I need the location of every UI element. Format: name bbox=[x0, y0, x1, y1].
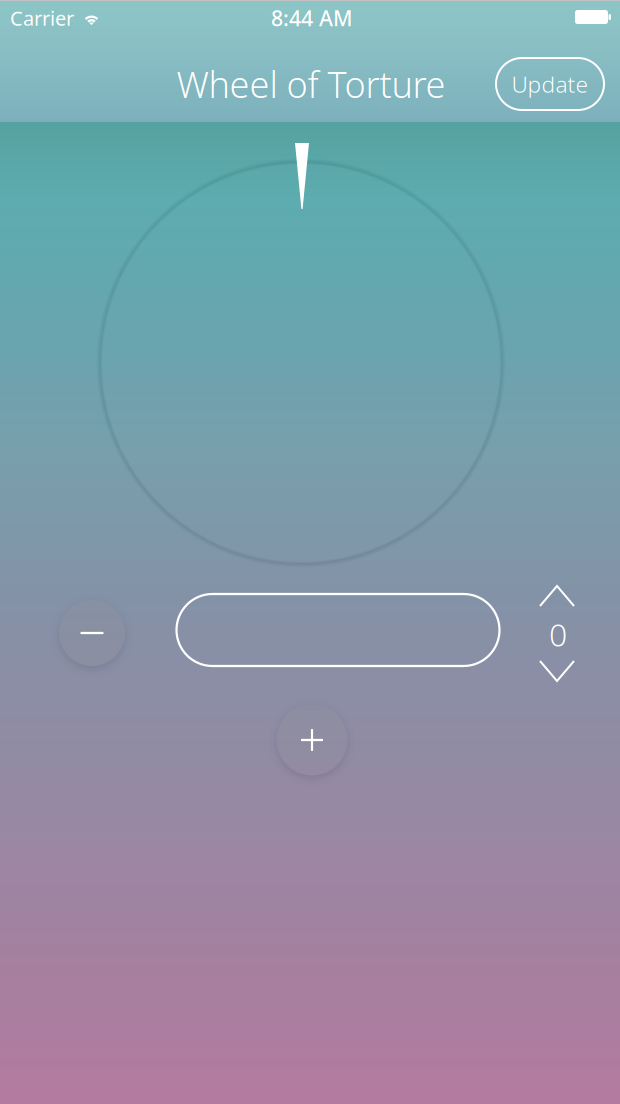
button[interactable]: Increment bbox=[268, 696, 355, 783]
button[interactable]: Update bbox=[496, 58, 604, 110]
staticText: 8:44 AM bbox=[271, 4, 353, 32]
button[interactable]: Entry field bbox=[176, 594, 499, 666]
button[interactable]: Increase bbox=[532, 578, 582, 614]
button[interactable]: Decrease bbox=[532, 653, 582, 689]
button[interactable]: Decrement bbox=[51, 592, 133, 674]
staticText: Carrier bbox=[10, 5, 74, 31]
staticText: 0 bbox=[549, 613, 567, 655]
staticText: Wheel of Torture bbox=[176, 60, 445, 108]
staticText: Update bbox=[511, 69, 588, 99]
